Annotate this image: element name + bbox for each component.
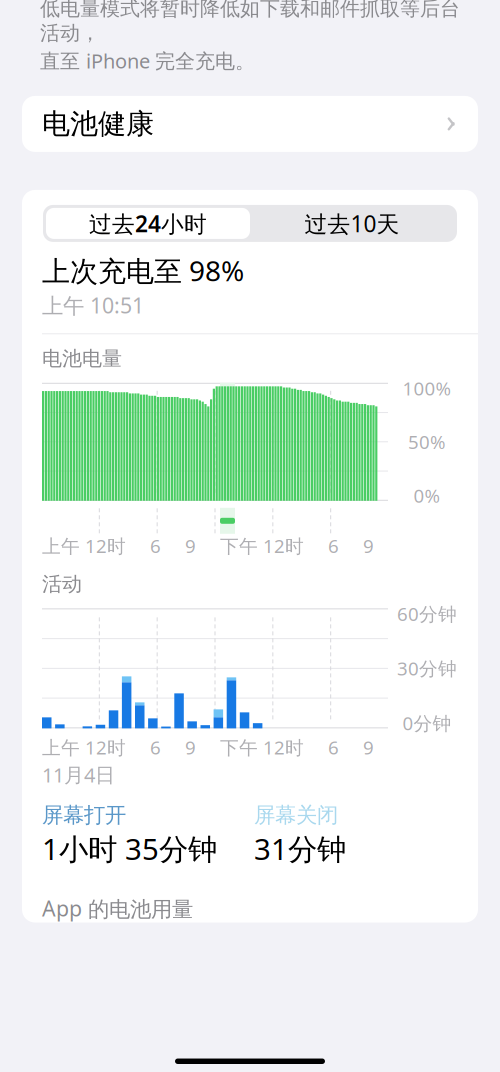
staticText: 1小时 35分钟: [42, 829, 217, 868]
staticText: 电池电量: [42, 346, 122, 371]
button[interactable]: 过去24小时: [46, 208, 250, 239]
staticText: 屏幕打开: [42, 802, 126, 828]
staticText: 低电量模式将暂时降低如下载和邮件抓取等后台活动，: [40, 0, 460, 45]
staticText: 0分钟: [402, 711, 451, 735]
staticText: 6: [328, 533, 339, 558]
staticText: 11月4日: [42, 761, 115, 788]
button[interactable]: 电池健康: [22, 96, 478, 152]
staticText: 上午 12时: [42, 533, 126, 558]
staticText: 9: [185, 533, 196, 558]
staticText: 6: [150, 533, 161, 558]
staticText: 6: [150, 735, 161, 760]
staticText: 过去24小时: [89, 208, 207, 238]
staticText: 下午 12时: [220, 533, 304, 558]
staticText: 上次充电至 98%: [42, 252, 244, 289]
staticText: 9: [363, 735, 374, 760]
staticText: 下午 12时: [220, 735, 304, 760]
staticText: 9: [185, 735, 196, 760]
staticText: 上午 10:51: [42, 291, 144, 319]
staticText: 0%: [413, 483, 440, 508]
staticText: 屏幕关闭: [254, 802, 338, 828]
staticText: App 的电池用量: [42, 894, 193, 922]
staticText: 上午 12时: [42, 735, 126, 760]
staticText: 过去10天: [304, 208, 399, 238]
staticText: 100%: [402, 376, 451, 401]
staticText: 9: [363, 533, 374, 558]
staticText: 6: [328, 735, 339, 760]
button[interactable]: 过去10天: [250, 208, 454, 239]
staticText: 60分钟: [397, 601, 457, 626]
staticText: 31分钟: [254, 829, 346, 868]
staticText: 电池健康: [42, 107, 154, 141]
staticText: 活动: [42, 572, 82, 596]
staticText: 30分钟: [397, 656, 457, 681]
staticText: 50%: [408, 429, 446, 454]
staticText: 直至 iPhone 完全充电。: [40, 47, 255, 74]
